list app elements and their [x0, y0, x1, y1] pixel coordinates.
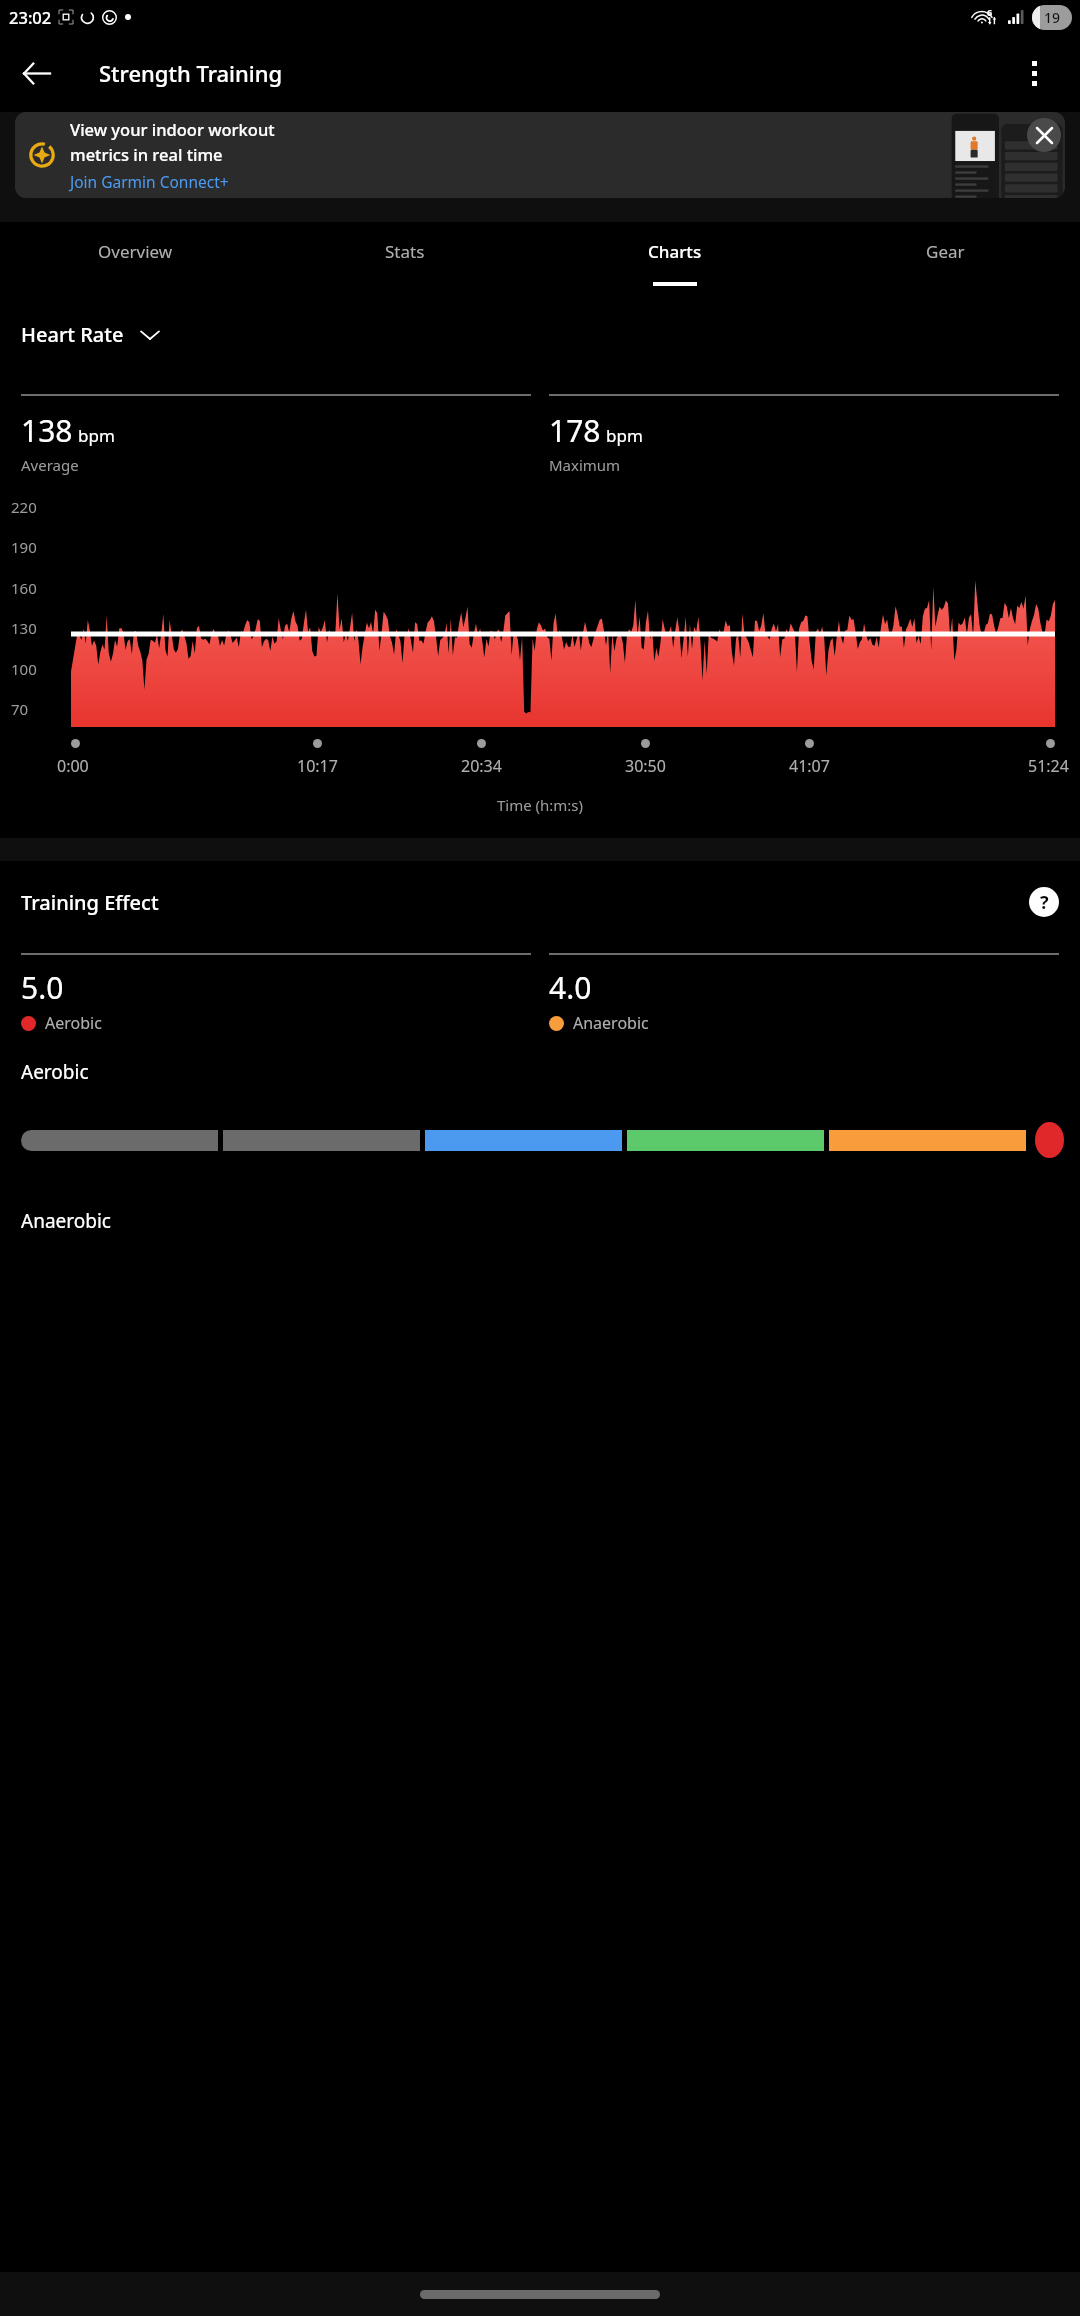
button[interactable]: More options: [998, 37, 1070, 109]
staticText: Aerobic: [21, 1059, 89, 1085]
staticText: Anaerobic: [573, 1012, 649, 1034]
staticText: Charts: [648, 240, 702, 263]
staticText: bpm: [606, 424, 643, 447]
staticText: 10:17: [297, 755, 338, 777]
staticText: bpm: [78, 424, 115, 447]
staticText: Training Effect: [21, 889, 159, 916]
staticText: 5.0: [21, 967, 64, 1008]
staticText: 138: [21, 410, 73, 451]
staticText: 100: [11, 659, 37, 679]
staticText: Gear: [926, 240, 965, 263]
button[interactable]: Back: [0, 37, 72, 109]
staticText: Heart Rate: [21, 321, 124, 348]
staticText: 220: [11, 497, 37, 517]
staticText: metrics in real time: [70, 143, 223, 165]
button[interactable]: Stats: [270, 222, 540, 301]
staticText: 178: [549, 410, 601, 451]
staticText: Overview: [98, 240, 173, 263]
staticText: 20:34: [461, 755, 502, 777]
staticText: Stats: [385, 240, 425, 263]
staticText: 19: [1044, 8, 1061, 27]
staticText: 41:07: [789, 755, 830, 777]
staticText: 160: [11, 578, 37, 598]
staticText: 4.0: [549, 967, 592, 1008]
staticText: 130: [11, 618, 37, 638]
staticText: 0:00: [57, 755, 89, 777]
staticText: Anaerobic: [21, 1208, 111, 1234]
staticText: 190: [11, 537, 37, 557]
button[interactable]: View your indoor workout: [15, 112, 1065, 198]
staticText: 6: [987, 6, 993, 18]
button[interactable]: Close: [1027, 118, 1061, 152]
staticText: Strength Training: [99, 58, 283, 88]
staticText: 70: [11, 699, 29, 719]
staticText: 23:02: [9, 6, 52, 28]
button[interactable]: Help: [1029, 887, 1059, 917]
button[interactable]: Join Garmin Connect+: [70, 171, 229, 192]
staticText: Average: [21, 455, 79, 475]
staticText: Aerobic: [45, 1012, 102, 1034]
staticText: 51:24: [1028, 755, 1069, 777]
staticText: View your indoor workout: [70, 118, 275, 140]
staticText: 30:50: [625, 755, 666, 777]
button[interactable]: Overview: [0, 222, 270, 301]
staticText: Time (h:m:s): [0, 795, 1080, 815]
button[interactable]: Heart Rate: [21, 321, 159, 348]
button[interactable]: Gear: [810, 222, 1080, 301]
staticText: Maximum: [549, 455, 621, 475]
staticText: ?: [1040, 890, 1049, 915]
button[interactable]: Charts: [540, 222, 810, 301]
